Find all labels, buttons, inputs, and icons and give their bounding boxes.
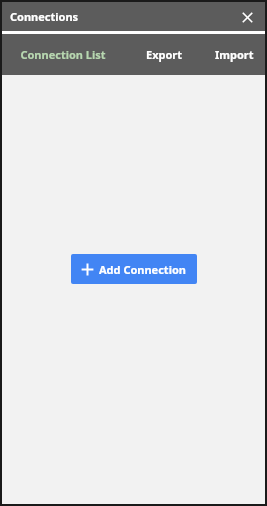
staticText: Connections [10,9,79,24]
button[interactable]: Add Connection [71,254,197,284]
staticText: Connection List [20,47,106,62]
button[interactable]: Connection List [2,34,124,75]
staticText: Export [146,47,183,62]
button[interactable]: Import [203,34,265,75]
button[interactable]: Close [237,7,257,27]
staticText: Add Connection [99,262,186,277]
button[interactable]: Export [132,34,196,75]
staticText: Import [215,47,254,62]
